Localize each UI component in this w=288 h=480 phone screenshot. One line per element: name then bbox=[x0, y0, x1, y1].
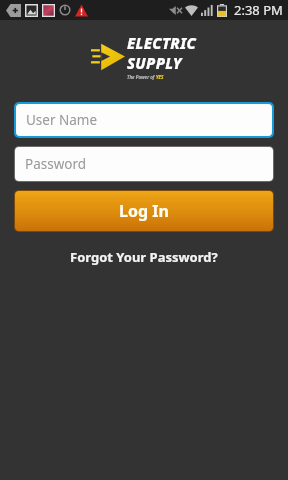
button[interactable]: Password bbox=[15, 147, 273, 181]
button[interactable]: Log In bbox=[15, 191, 273, 231]
staticText: 2:38 PM bbox=[234, 1, 283, 19]
button[interactable]: User Name bbox=[16, 104, 272, 136]
staticText: Log In bbox=[119, 200, 169, 222]
staticText: The Power of bbox=[127, 74, 156, 80]
staticText: User Name bbox=[26, 111, 98, 129]
staticText: SUPPLY bbox=[127, 53, 182, 73]
staticText: Forgot Your Password? bbox=[70, 248, 218, 266]
staticText: ELECTRIC bbox=[127, 33, 197, 53]
staticText: YES bbox=[156, 74, 164, 80]
button[interactable]: Forgot Your Password? bbox=[0, 248, 288, 266]
staticText: Password bbox=[25, 155, 87, 173]
